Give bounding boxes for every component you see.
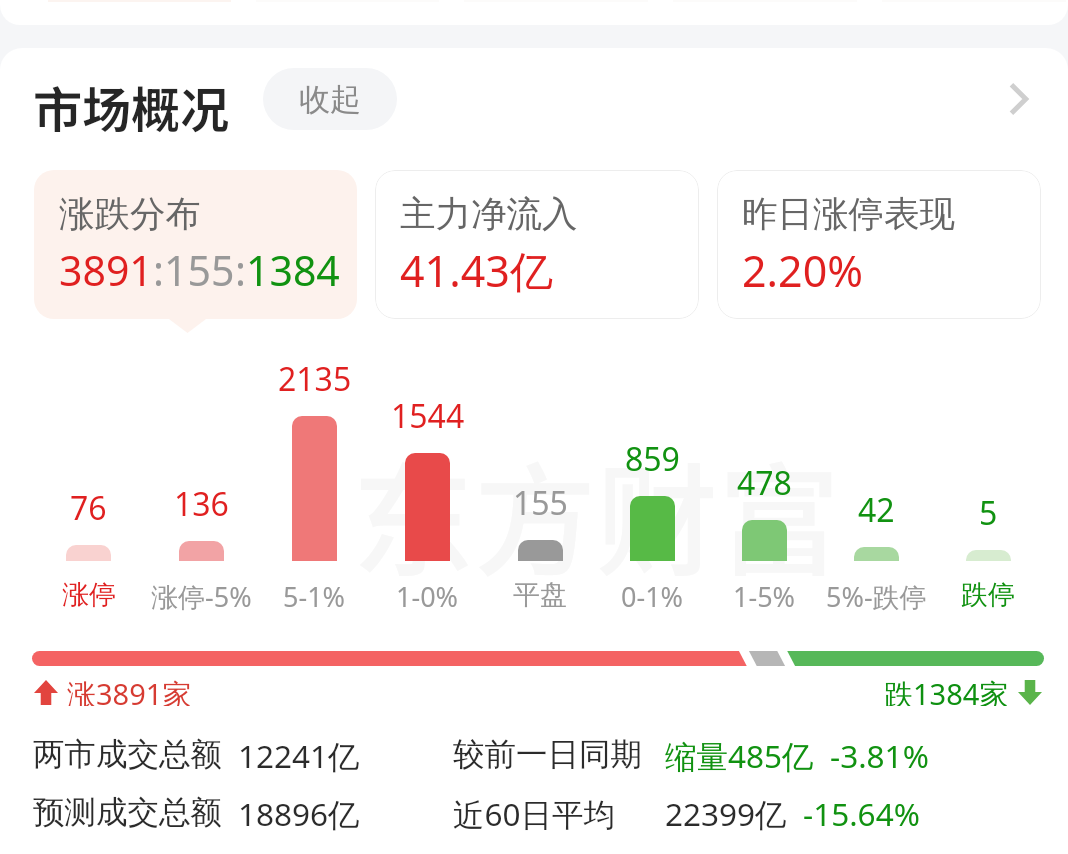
staticText: 平盘 xyxy=(513,578,567,612)
staticText: 155 xyxy=(164,242,235,298)
staticText: 昨日涨停表现 xyxy=(742,192,955,237)
staticText: 市场概况 xyxy=(33,71,230,133)
staticText: : xyxy=(235,242,246,298)
button[interactable]: 涨跌分布 xyxy=(34,170,357,319)
staticText: 42 xyxy=(858,488,895,532)
staticText: 近60日平均 xyxy=(453,792,616,835)
staticText: 1-0% xyxy=(396,578,459,612)
staticText: 5%-跌停 xyxy=(826,578,927,612)
staticText: -3.81% xyxy=(830,734,929,777)
staticText: 涨停-5% xyxy=(151,578,252,612)
staticText: 5 xyxy=(979,491,998,535)
staticText: 东方财富 xyxy=(352,424,840,601)
button[interactable]: 收起 xyxy=(263,68,397,130)
button[interactable]: Open market overview xyxy=(988,68,1050,130)
staticText: 478 xyxy=(737,461,792,505)
staticText: 859 xyxy=(625,437,680,481)
staticText: 跌停 xyxy=(961,578,1015,612)
staticText: -15.64% xyxy=(803,792,920,835)
staticText: 较前一日同期 xyxy=(453,735,642,775)
staticText: 涨停 xyxy=(62,578,116,612)
staticText: 155 xyxy=(513,481,568,525)
staticText: 12241亿 xyxy=(238,734,360,777)
staticText: 18896亿 xyxy=(238,792,360,835)
staticText: 1384 xyxy=(246,242,340,298)
staticText: 涨跌分布 xyxy=(59,192,201,237)
button[interactable]: 跌1384家 xyxy=(884,676,1042,708)
button[interactable]: 涨3891家 xyxy=(34,676,192,708)
staticText: 收起 xyxy=(299,80,361,119)
staticText: 1544 xyxy=(391,394,465,438)
staticText: : xyxy=(153,242,164,298)
staticText: 136 xyxy=(174,482,229,526)
button[interactable]: 主力净流入 xyxy=(375,170,699,319)
staticText: 41.43亿 xyxy=(400,241,553,300)
staticText: 涨3891家 xyxy=(67,674,192,706)
staticText: 5-1% xyxy=(283,578,346,612)
staticText: 跌1384家 xyxy=(884,674,1009,706)
staticText: 2135 xyxy=(278,357,352,401)
staticText: 缩量485亿 xyxy=(665,734,814,777)
staticText: 22399亿 xyxy=(665,792,787,835)
staticText: 预测成交总额 xyxy=(33,793,222,833)
staticText: 两市成交总额 xyxy=(33,735,222,775)
staticText: 主力净流入 xyxy=(400,192,578,237)
staticText: 2.20% xyxy=(742,241,864,300)
staticText: 0-1% xyxy=(621,578,684,612)
staticText: 1-5% xyxy=(733,578,796,612)
staticText: 76 xyxy=(70,486,107,530)
staticText: 3891 xyxy=(59,242,153,298)
button[interactable]: 昨日涨停表现 xyxy=(717,170,1041,319)
